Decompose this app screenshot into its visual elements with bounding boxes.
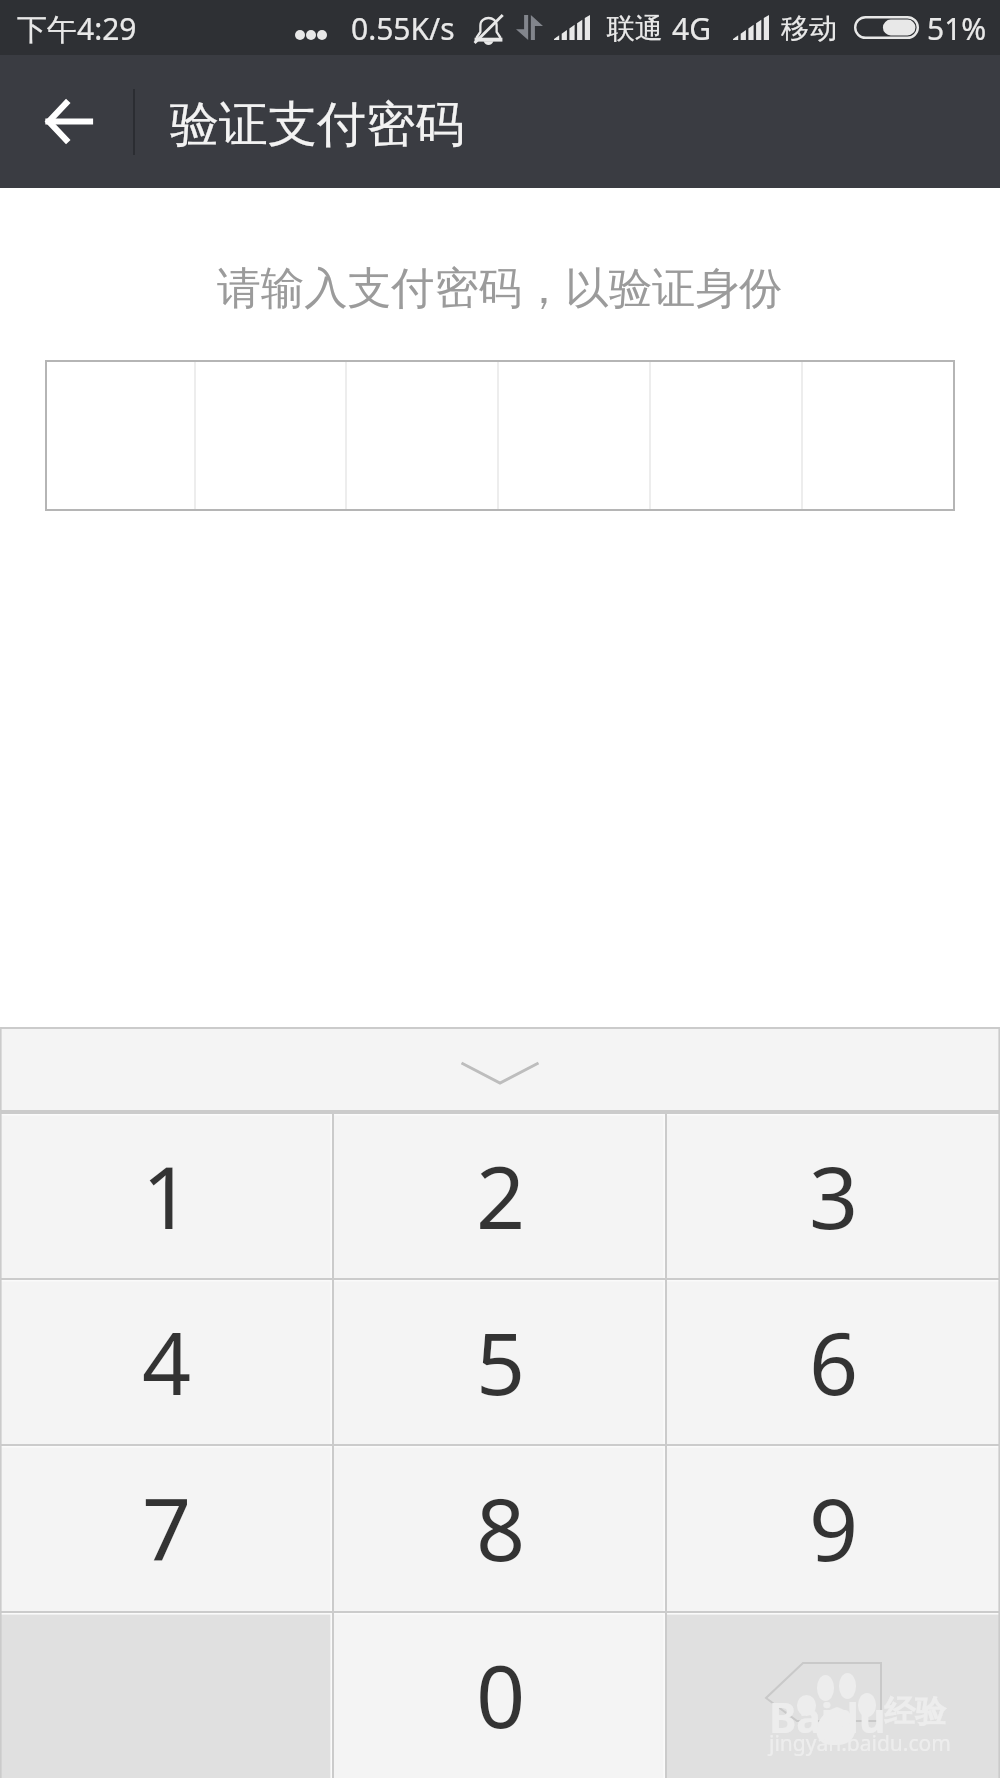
button[interactable]: 4 [0,1278,334,1444]
staticText: 4G [672,8,711,49]
button[interactable]: 0 [334,1611,667,1778]
button[interactable] [651,360,803,511]
button[interactable] [803,360,955,511]
staticText: 经验 [884,1692,946,1731]
staticText: 验证支付密码 [170,94,464,156]
button[interactable] [499,360,651,511]
staticText: 5 [476,1303,526,1420]
staticText: 联通 [607,11,663,46]
button[interactable] [0,1611,334,1778]
staticText: 0.55K/s [351,8,455,49]
staticText: Baidu [769,1689,886,1745]
staticText: 下午4:29 [17,8,137,49]
button[interactable]: 3 [667,1112,1000,1278]
button[interactable]: Baidu [667,1611,1000,1778]
button[interactable]: 2 [334,1112,667,1278]
staticText: 6 [809,1303,859,1420]
staticText: 移动 [781,11,837,46]
staticText: 2 [476,1137,526,1254]
staticText: 0 [476,1636,526,1753]
staticText: 1 [142,1137,192,1254]
staticText: 7 [142,1469,192,1586]
button[interactable] [45,360,196,511]
staticText: 3 [809,1137,859,1254]
button[interactable]: 7 [0,1444,334,1611]
staticText: 4 [142,1303,192,1420]
button[interactable]: 1 [0,1112,334,1278]
button[interactable]: 6 [667,1278,1000,1444]
button[interactable]: 8 [334,1444,667,1611]
button[interactable] [196,360,347,511]
button[interactable]: 9 [667,1444,1000,1611]
button[interactable]: Hide keyboard [0,1027,1000,1112]
button[interactable] [347,360,499,511]
staticText: 8 [476,1469,526,1586]
staticText: 9 [809,1469,859,1586]
staticText: 51% [927,8,987,49]
button[interactable]: Back [1,55,134,188]
staticText: jingyan.baidu.com [769,1729,951,1758]
button[interactable]: 5 [334,1278,667,1444]
staticText: 请输入支付密码，以验证身份 [0,261,1000,316]
